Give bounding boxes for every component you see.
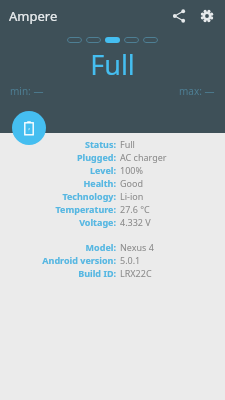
button[interactable]: Model:	[0, 240, 225, 253]
button[interactable]: Plugged:	[0, 150, 225, 163]
staticText: Health:	[83, 177, 116, 189]
button[interactable]: Settings	[193, 2, 221, 30]
button[interactable]: Technology:	[0, 189, 225, 202]
staticText: Nexus 4	[120, 241, 154, 253]
button[interactable]: Page 3	[105, 37, 120, 43]
staticText: Model:	[85, 241, 116, 253]
staticText: Build ID:	[78, 267, 116, 279]
button[interactable]: Status:	[0, 137, 225, 150]
button[interactable]: Build ID:	[0, 266, 225, 279]
staticText: Voltage:	[79, 216, 116, 228]
button[interactable]: Battery charging	[12, 111, 46, 145]
button[interactable]: Voltage:	[0, 215, 225, 228]
button[interactable]: Share	[165, 2, 193, 30]
staticText: Full	[120, 138, 135, 150]
staticText: Android version:	[42, 254, 116, 266]
staticText: 100%	[120, 164, 143, 176]
button[interactable]: Page 2	[86, 37, 101, 43]
staticText: LRX22C	[120, 267, 152, 279]
button[interactable]: Page 4	[124, 37, 139, 43]
staticText: Full	[90, 46, 135, 83]
staticText: Temperature:	[55, 203, 116, 215]
staticText: Plugged:	[76, 151, 116, 163]
staticText: min: —	[10, 84, 44, 98]
button[interactable]: Health:	[0, 176, 225, 189]
staticText: Technology:	[62, 190, 116, 202]
button[interactable]: Level:	[0, 163, 225, 176]
button[interactable]: Android version:	[0, 253, 225, 266]
button[interactable]: Temperature:	[0, 202, 225, 215]
button[interactable]: Page 1	[67, 37, 82, 43]
staticText: AC charger	[120, 151, 167, 163]
staticText: Level:	[90, 164, 116, 176]
staticText: Good	[120, 177, 143, 189]
staticText: 5.0.1	[120, 254, 141, 266]
staticText: 4.332 V	[120, 216, 151, 228]
staticText: Ampere	[9, 7, 58, 25]
staticText: max: —	[179, 84, 215, 98]
staticText: Status:	[84, 138, 116, 150]
staticText: Li-ion	[120, 190, 144, 202]
staticText: 27.6 °C	[120, 203, 150, 215]
button[interactable]: Page 5	[143, 37, 158, 43]
